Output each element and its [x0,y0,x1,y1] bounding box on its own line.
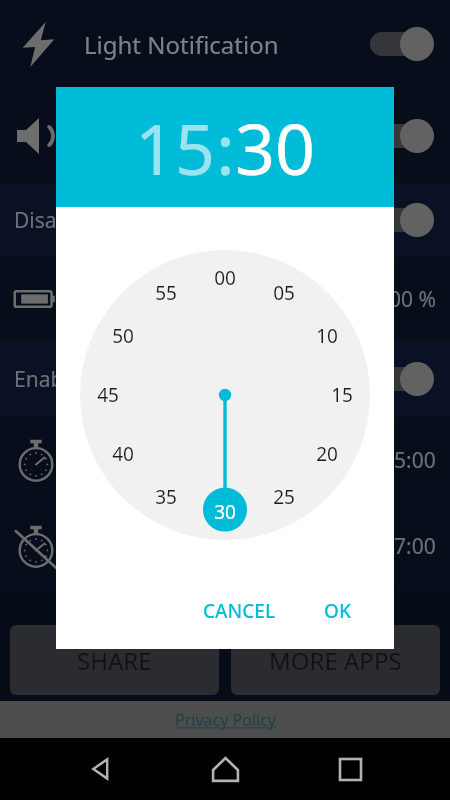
button[interactable]: 100 % [0,257,450,341]
button[interactable]: CANCEL [193,590,286,632]
button[interactable]: Privacy Policy [0,701,450,738]
button[interactable]: 15 [135,100,216,195]
staticText: : [216,100,235,195]
staticText: 10 [316,323,338,349]
button[interactable]: Light Notification [0,0,450,88]
button[interactable]: 15:00 [0,417,450,503]
button[interactable]: 30 [235,100,316,195]
button[interactable]: SHARE [10,625,219,695]
button[interactable]: Minute picker [80,250,370,540]
button[interactable]: Toggle [370,27,434,61]
staticText: SHARE [77,644,152,677]
button[interactable]: Recents [325,744,375,794]
staticText: 07:00 [382,532,436,561]
button[interactable]: Toggle [0,88,450,183]
staticText: 15 [135,100,216,195]
staticText: 15 [331,382,353,408]
staticText: 50 [112,323,134,349]
staticText: 15:00 [382,446,436,475]
staticText: 55 [155,280,177,306]
staticText: Enable timer [14,365,140,394]
staticText: 40 [112,441,134,467]
button[interactable]: Toggle [370,203,434,237]
staticText: Light Notification [84,28,279,61]
staticText: 25 [273,484,295,510]
staticText: 45 [97,382,119,408]
staticText: 30 [235,100,316,195]
staticText: 00 [214,265,236,291]
button[interactable]: Home [200,744,250,794]
button[interactable]: MORE APPS [231,625,440,695]
staticText: MORE APPS [269,644,402,677]
staticText: 20 [316,441,338,467]
button[interactable]: Back [75,744,125,794]
staticText: CANCEL [203,598,276,624]
staticText: 100 % [377,285,436,314]
staticText: OK [324,598,351,624]
staticText: Disable sound [14,206,154,235]
button[interactable]: Toggle [370,362,434,396]
button[interactable]: Toggle [370,119,434,153]
staticText: 35 [155,484,177,510]
button[interactable]: Disable sound [0,183,450,257]
staticText: 30 [214,499,236,525]
staticText: 05 [273,280,295,306]
button[interactable]: 07:00 [0,503,450,589]
staticText: Privacy Policy [175,709,276,731]
button[interactable]: OK [314,590,361,632]
button[interactable]: Enable timer [0,341,450,417]
